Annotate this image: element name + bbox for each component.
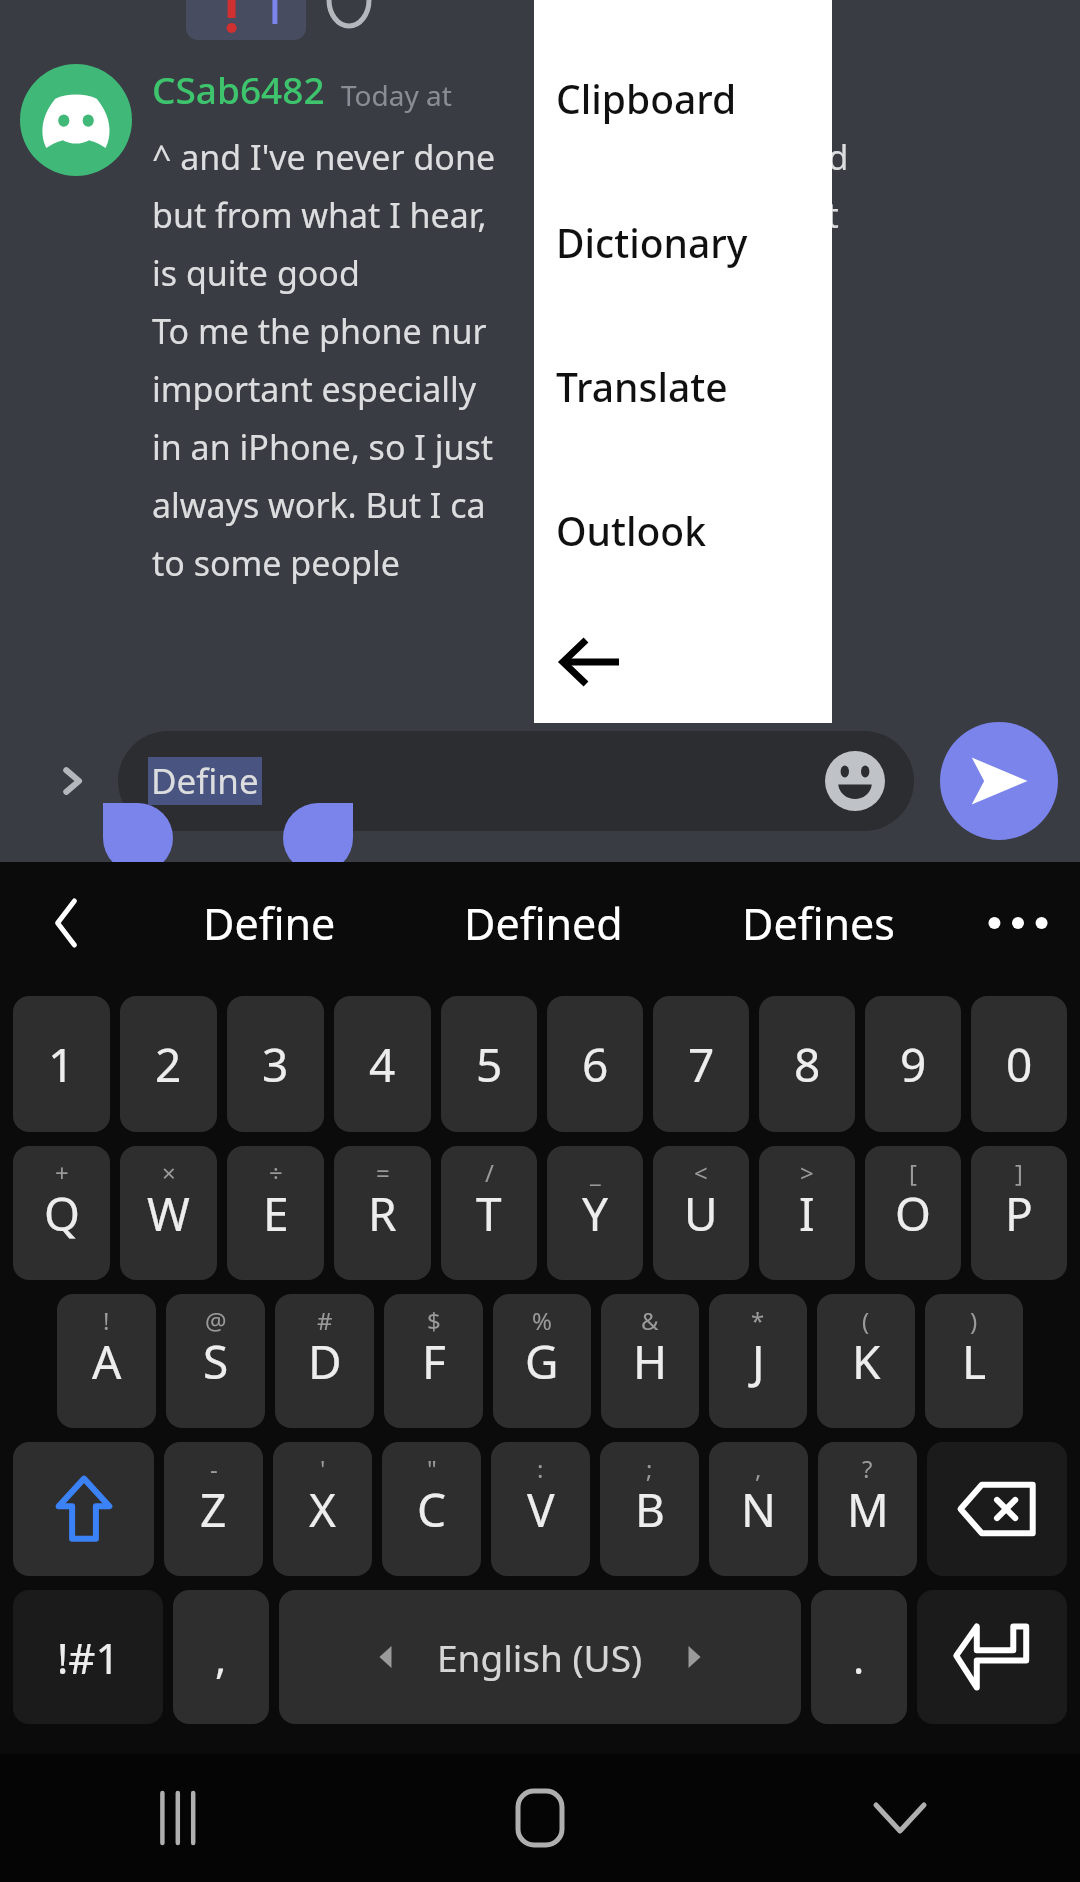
button[interactable]: K (817, 1294, 915, 1428)
button[interactable]: Backspace (927, 1442, 1067, 1576)
button[interactable]: 4 (334, 996, 431, 1132)
staticText: Defined (464, 894, 623, 953)
button[interactable]: Defines (681, 862, 956, 984)
staticText: 0 (1006, 1033, 1033, 1096)
button[interactable]: Emoji (822, 748, 888, 814)
staticText: !#1 (57, 1629, 120, 1686)
button[interactable]: 3 (227, 996, 324, 1132)
button[interactable]: Expand actions (36, 745, 108, 817)
button[interactable]: Reaction (186, 0, 306, 40)
button[interactable]: H (601, 1294, 699, 1428)
staticText: 4 (369, 1033, 396, 1096)
button[interactable]: Translate (534, 314, 832, 458)
staticText: × (162, 1156, 176, 1189)
button[interactable]: 9 (865, 996, 961, 1132)
staticText: Clipboard (556, 72, 737, 125)
button[interactable]: 7 (653, 996, 749, 1132)
button[interactable]: V (491, 1442, 590, 1576)
staticText: Dictionary (556, 216, 748, 269)
button[interactable]: D (275, 1294, 374, 1428)
staticText: X (309, 1478, 336, 1541)
staticText: R (368, 1182, 397, 1245)
button[interactable]: E (227, 1146, 324, 1280)
button[interactable]: , (173, 1590, 269, 1724)
staticText: $ (427, 1304, 441, 1337)
button[interactable]: R (334, 1146, 431, 1280)
staticText: G (525, 1330, 559, 1393)
staticText: Translate (556, 360, 728, 413)
staticText: To me the phone nur hat (152, 308, 690, 354)
staticText: V (527, 1478, 555, 1541)
staticText: to some people (152, 540, 400, 586)
staticText: 6 (582, 1033, 609, 1096)
staticText: ! (103, 1304, 110, 1337)
button[interactable]: Symbols (13, 1590, 163, 1724)
button[interactable]: Clipboard (534, 26, 832, 170)
staticText: 1 (48, 1033, 75, 1096)
staticText: in an iPhone, so I just that will (152, 424, 753, 470)
button[interactable]: Outlook (534, 458, 832, 602)
button[interactable]: J (709, 1294, 807, 1428)
button[interactable]: X (273, 1442, 372, 1576)
staticText: L (962, 1330, 987, 1393)
button[interactable]: 6 (547, 996, 643, 1132)
button[interactable]: U (653, 1146, 749, 1280)
staticText: > (800, 1156, 814, 1189)
button[interactable]: Send (940, 722, 1058, 840)
staticText: N (741, 1478, 776, 1541)
button[interactable]: Recents (0, 1754, 360, 1882)
button[interactable]: Z (164, 1442, 263, 1576)
button[interactable]: N (709, 1442, 808, 1576)
staticText: , (755, 1452, 762, 1485)
button[interactable]: Space, English US (279, 1590, 801, 1724)
button[interactable]: I (759, 1146, 855, 1280)
button[interactable]: Back (534, 602, 832, 722)
staticText: " (427, 1452, 437, 1485)
button[interactable]: CSab6482 avatar (20, 64, 132, 176)
button[interactable]: Defined (406, 862, 681, 984)
button[interactable]: Shift (13, 1442, 154, 1576)
button[interactable]: F (384, 1294, 483, 1428)
button[interactable]: B (600, 1442, 699, 1576)
button[interactable]: Enter (917, 1590, 1067, 1724)
button[interactable]: W (120, 1146, 217, 1280)
staticText: Y (582, 1182, 609, 1245)
button[interactable]: . (811, 1590, 907, 1724)
staticText: M (847, 1478, 889, 1541)
button[interactable]: A (57, 1294, 156, 1428)
button[interactable]: 2 (120, 996, 217, 1132)
button[interactable]: Previous suggestions (0, 862, 132, 984)
staticText: = (376, 1156, 390, 1189)
button[interactable]: T (441, 1146, 537, 1280)
button[interactable]: 8 (759, 996, 855, 1132)
button[interactable]: Home (360, 1754, 720, 1882)
staticText: Q (44, 1182, 80, 1245)
button[interactable]: 5 (441, 996, 537, 1132)
button[interactable]: Y (547, 1146, 643, 1280)
staticText: always work. But I ca v it matters (152, 482, 773, 528)
button[interactable]: Q (13, 1146, 110, 1280)
button[interactable]: G (493, 1294, 591, 1428)
button[interactable]: More options (956, 862, 1080, 984)
button[interactable]: 1 (13, 996, 110, 1132)
button[interactable]: L (925, 1294, 1023, 1428)
staticText: , (215, 1629, 227, 1686)
button[interactable]: M (818, 1442, 917, 1576)
button[interactable]: Dictionary (534, 170, 832, 314)
staticText: S (203, 1330, 229, 1393)
button[interactable]: S (166, 1294, 265, 1428)
staticText: @ (205, 1304, 227, 1337)
button[interactable]: P (971, 1146, 1067, 1280)
staticText: T (476, 1182, 502, 1245)
button[interactable]: Define (132, 862, 406, 984)
staticText: D (308, 1330, 342, 1393)
staticText: ? (862, 1452, 873, 1485)
button[interactable]: 0 (971, 996, 1067, 1132)
button[interactable]: O (865, 1146, 961, 1280)
staticText: H (633, 1330, 668, 1393)
button[interactable]: Hide keyboard (720, 1754, 1080, 1882)
button[interactable]: Define (118, 731, 914, 831)
staticText: * (751, 1304, 765, 1337)
button[interactable]: C (382, 1442, 481, 1576)
staticText: Outlook (556, 504, 706, 557)
